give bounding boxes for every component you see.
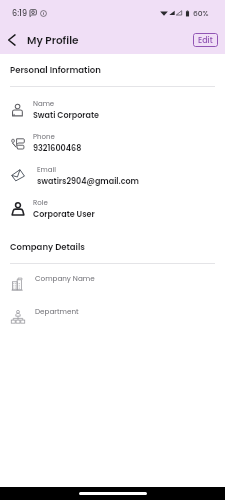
button[interactable]: Department [0, 297, 225, 330]
button[interactable]: Edit [193, 33, 218, 47]
button[interactable]: Name [0, 93, 225, 126]
staticText: Company Details [10, 241, 85, 253]
button[interactable]: Back [3, 30, 23, 50]
staticText: 60% [193, 8, 209, 18]
button[interactable]: Company Name [0, 264, 225, 297]
staticText: Swati Corporate [33, 110, 99, 121]
staticText: Company Name [35, 273, 95, 283]
staticText: Name [33, 99, 55, 109]
staticText: 9321600468 [33, 143, 82, 154]
staticText: Personal Information [10, 64, 101, 76]
staticText: Email [37, 165, 56, 175]
staticText: Edit [198, 35, 213, 46]
staticText: swatirs2904@gmail.com [37, 176, 139, 187]
staticText: Department [35, 306, 79, 316]
button[interactable]: Role [0, 192, 225, 225]
staticText: Corporate User [33, 209, 95, 220]
staticText: Phone [33, 132, 55, 142]
staticText: 6:19 [12, 8, 27, 19]
staticText: My Profile [27, 33, 79, 48]
staticText: Role [33, 198, 48, 208]
button[interactable]: Email [0, 159, 225, 192]
button[interactable]: Phone [0, 126, 225, 159]
